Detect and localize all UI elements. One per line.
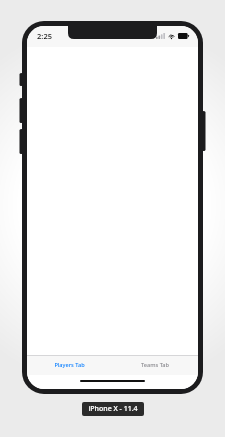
button[interactable]: Players Tab <box>27 355 112 375</box>
staticText: Teams Tab <box>141 361 169 369</box>
staticText: 2:25 <box>37 31 52 41</box>
staticText: iPhone X - 11.4 <box>88 404 138 414</box>
other: Wi-Fi <box>168 33 175 39</box>
other: Battery <box>178 33 189 39</box>
staticText: Players Tab <box>54 361 85 369</box>
button[interactable]: Teams Tab <box>112 355 198 375</box>
other: Cellular signal <box>156 33 165 39</box>
